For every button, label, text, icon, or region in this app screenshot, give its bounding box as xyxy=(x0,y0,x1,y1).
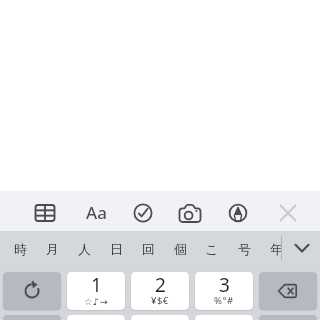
button[interactable]: Text format xyxy=(76,193,116,231)
button[interactable]: Handwriting xyxy=(218,194,258,232)
button[interactable]: Camera xyxy=(170,194,210,232)
button[interactable]: 個 xyxy=(164,232,196,265)
staticText: 号 xyxy=(238,241,251,257)
button[interactable]: Backspace xyxy=(259,272,317,310)
button[interactable]: Close keyboard xyxy=(268,194,308,232)
staticText: 3 xyxy=(219,272,230,298)
button[interactable]: 号 xyxy=(228,232,260,265)
button[interactable]: Confirm xyxy=(123,194,163,232)
staticText: こ xyxy=(205,241,219,257)
staticText: Aa xyxy=(86,201,107,224)
button[interactable]: 月 xyxy=(36,232,68,265)
button[interactable]: 時 xyxy=(4,232,36,265)
staticText: 年 xyxy=(270,241,281,257)
staticText: 2 xyxy=(155,272,166,298)
staticText: ¥$€ xyxy=(151,294,169,307)
button[interactable]: こ xyxy=(196,232,228,265)
staticText: 日 xyxy=(110,241,123,257)
button[interactable]: 3 xyxy=(195,272,253,310)
button[interactable]: 4 xyxy=(67,315,125,320)
button[interactable]: 回 xyxy=(132,232,164,265)
staticText: 回 xyxy=(142,241,155,257)
button[interactable]: 1 xyxy=(67,272,125,310)
staticText: 人 xyxy=(78,241,91,257)
staticText: %°# xyxy=(214,294,234,307)
button[interactable]: 人 xyxy=(68,232,100,265)
button[interactable]: Conversion xyxy=(3,315,61,320)
staticText: 個 xyxy=(174,241,187,257)
staticText: 月 xyxy=(46,241,59,257)
button[interactable]: 6 xyxy=(195,315,253,320)
button[interactable]: Space xyxy=(259,315,317,320)
button[interactable]: 日 xyxy=(100,232,132,265)
button[interactable]: 2 xyxy=(131,272,189,310)
button[interactable]: Show more suggestions xyxy=(284,231,320,265)
button[interactable]: 5 xyxy=(131,315,189,320)
button[interactable]: 年 xyxy=(260,232,281,265)
staticText: ☆♪→ xyxy=(84,296,109,307)
button[interactable]: Table xyxy=(25,194,65,232)
button[interactable]: Switch input mode xyxy=(3,272,61,310)
staticText: 時 xyxy=(14,241,27,257)
staticText: 1 xyxy=(91,272,102,298)
